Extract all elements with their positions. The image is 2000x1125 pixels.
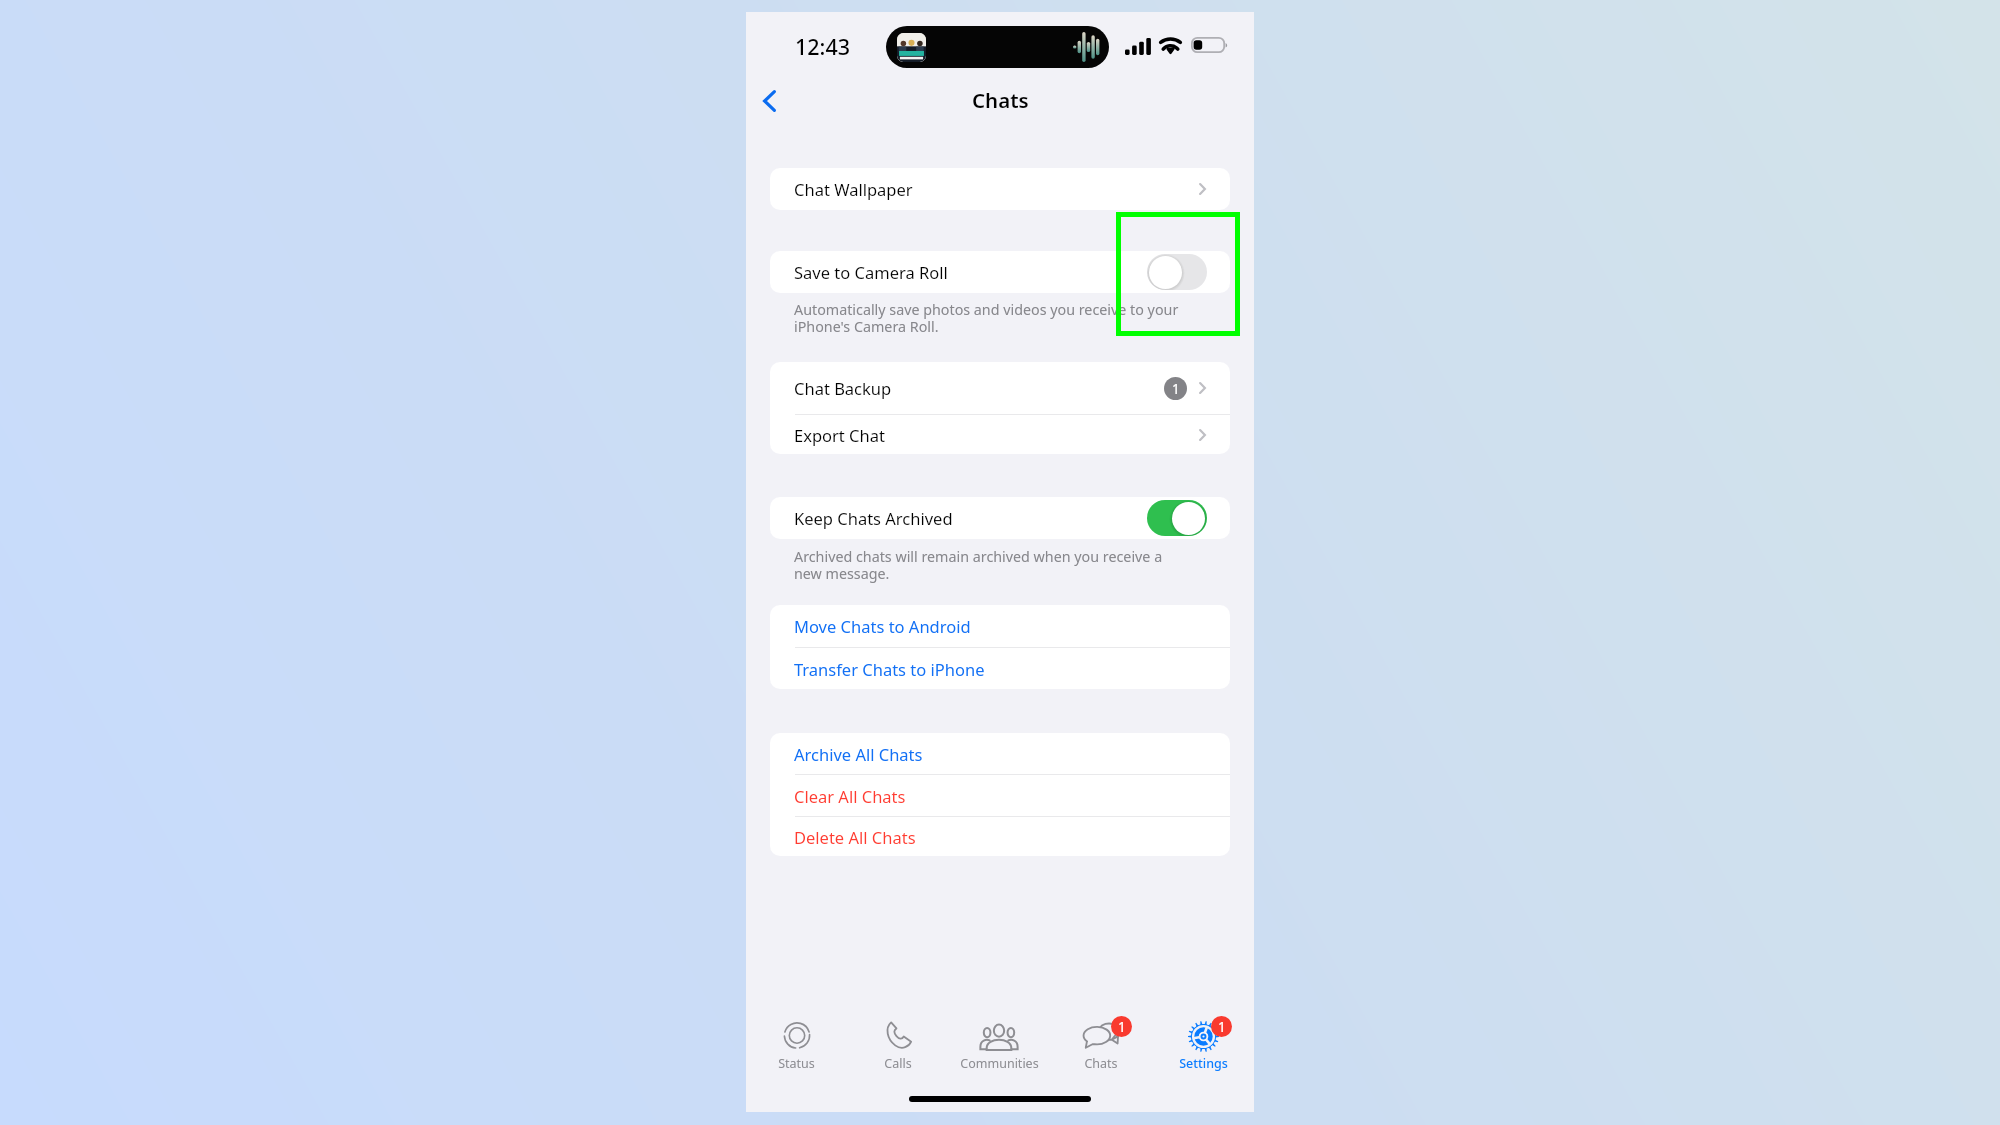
staticText: Clear All Chats [794, 785, 906, 807]
button[interactable]: Clear All Chats [770, 775, 1230, 816]
button[interactable]: Chat Backup [770, 362, 1230, 414]
button[interactable]: Keep Chats Archived [770, 497, 1230, 539]
staticText: Status [778, 1055, 815, 1072]
button[interactable]: Calls [847, 1021, 948, 1081]
button[interactable]: Toggle off [1147, 254, 1207, 290]
button[interactable]: Toggle on [1147, 500, 1207, 536]
staticText: Transfer Chats to iPhone [794, 658, 985, 680]
button[interactable]: Chat Wallpaper [770, 168, 1230, 210]
staticText: Automatically save photos and videos you… [794, 300, 1179, 336]
staticText: Keep Chats Archived [794, 507, 953, 529]
button[interactable]: Move Chats to Android [770, 605, 1230, 647]
staticText: Save to Camera Roll [794, 261, 948, 283]
staticText: 1 [1118, 1018, 1126, 1036]
staticText: 1 [1172, 380, 1180, 398]
staticText: Archive All Chats [794, 743, 923, 765]
staticText: Chat Backup [794, 377, 892, 399]
staticText: Communities [960, 1055, 1039, 1072]
button[interactable]: Archive All Chats [770, 733, 1230, 774]
button[interactable]: Export Chat [770, 415, 1230, 454]
button[interactable]: 1 [1152, 1021, 1254, 1081]
staticText: Settings [1179, 1055, 1228, 1072]
staticText: Delete All Chats [794, 826, 916, 848]
staticText: Archived chats will remain archived when… [794, 547, 1163, 583]
staticText: Chats [1084, 1055, 1118, 1072]
button[interactable]: Status [746, 1021, 847, 1081]
button[interactable]: Delete All Chats [770, 817, 1230, 856]
staticText: Export Chat [794, 424, 885, 446]
staticText: Chats [972, 86, 1029, 114]
button[interactable]: Transfer Chats to iPhone [770, 648, 1230, 689]
staticText: 12:43 [795, 32, 851, 61]
staticText: Chat Wallpaper [794, 178, 913, 200]
staticText: Calls [884, 1055, 912, 1072]
staticText: 1 [1218, 1018, 1226, 1036]
staticText: Move Chats to Android [794, 615, 971, 637]
button[interactable]: Save to Camera Roll [770, 251, 1230, 293]
button[interactable]: 1 [1050, 1021, 1152, 1081]
button[interactable]: Back [747, 79, 791, 123]
button[interactable]: Communities [948, 1021, 1050, 1081]
